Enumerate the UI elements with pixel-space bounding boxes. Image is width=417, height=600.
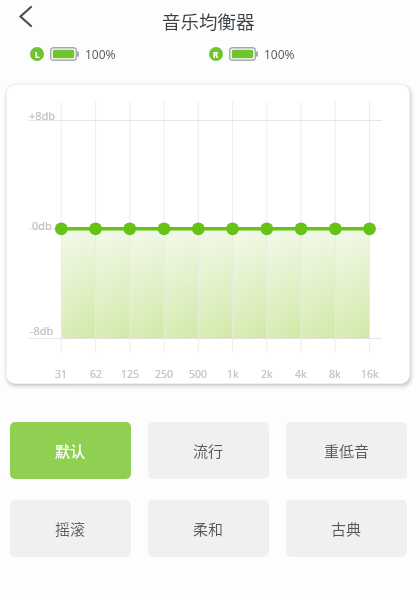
staticText: 16k (361, 367, 379, 381)
button[interactable]: 默认 (10, 422, 131, 479)
staticText: 62 (90, 367, 103, 381)
staticText: 31 (55, 367, 68, 381)
staticText: 500 (189, 367, 208, 381)
button[interactable]: 重低音 (286, 422, 407, 479)
button[interactable]: 摇滚 (10, 500, 131, 557)
staticText: 100% (85, 46, 116, 61)
staticText: 4k (295, 367, 307, 381)
staticText: 重低音 (324, 440, 370, 462)
button[interactable]: 古典 (286, 500, 407, 557)
staticText: 8k (329, 367, 341, 381)
staticText: 摇滚 (55, 518, 86, 540)
staticText: 古典 (331, 518, 362, 540)
staticText: 1k (227, 367, 239, 381)
staticText: +8db (29, 108, 56, 123)
button[interactable]: 柔和 (148, 500, 269, 557)
staticText: 音乐均衡器 (162, 8, 255, 35)
staticText: R (213, 49, 219, 60)
staticText: 默认 (55, 440, 86, 462)
staticText: 100% (264, 46, 295, 61)
staticText: 125 (121, 367, 140, 381)
staticText: -8db (30, 323, 54, 338)
button[interactable]: 流行 (148, 422, 269, 479)
staticText: 2k (261, 367, 273, 381)
staticText: L (35, 49, 40, 60)
staticText: 柔和 (193, 518, 224, 540)
staticText: 0db (32, 218, 52, 233)
staticText: 流行 (193, 440, 224, 462)
staticText: 250 (155, 367, 174, 381)
button[interactable] (10, 1, 40, 31)
